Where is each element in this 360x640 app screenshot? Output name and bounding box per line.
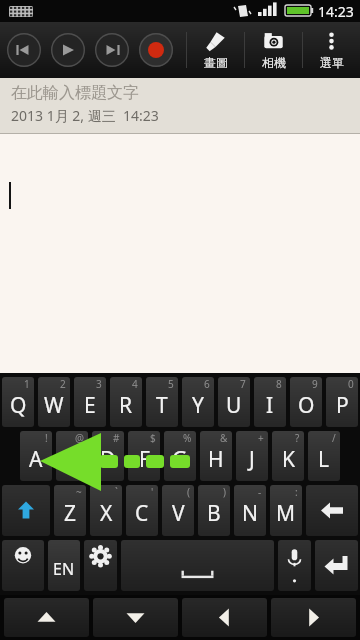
button[interactable]: 6 [182, 377, 214, 427]
button[interactable]: % [164, 431, 196, 481]
button[interactable]: : [270, 485, 302, 536]
button[interactable]: 相機 [245, 22, 302, 78]
button[interactable]: Backspace [306, 485, 358, 536]
staticText: F [139, 445, 150, 474]
button[interactable]: # [92, 431, 124, 481]
staticText: G [172, 445, 188, 474]
staticText: 3 [96, 377, 102, 391]
button[interactable]: ! [20, 431, 52, 481]
staticText: # [113, 431, 120, 445]
button[interactable]: Space [121, 540, 274, 591]
staticText: I [266, 391, 274, 420]
button[interactable]: Settings [84, 540, 117, 591]
staticText: ` [115, 485, 118, 499]
button[interactable]: Shift [2, 485, 50, 536]
staticText: 選單 [320, 55, 344, 70]
button[interactable]: Symbols [2, 540, 44, 591]
button[interactable]: @ [56, 431, 88, 481]
staticText: U [226, 391, 242, 420]
staticText: M [276, 499, 296, 528]
button[interactable]: 8 [254, 377, 286, 427]
staticText: / [332, 431, 336, 445]
staticText: Y [192, 391, 204, 420]
button[interactable]: $ [128, 431, 160, 481]
button[interactable]: 1 [2, 377, 34, 427]
button[interactable]: Previous [2, 28, 46, 72]
button[interactable]: 畫圖 [187, 22, 244, 78]
staticText: 7 [240, 377, 246, 391]
button[interactable]: 7 [218, 377, 250, 427]
staticText: J [249, 445, 255, 474]
button[interactable]: EN [48, 540, 80, 591]
staticText: R [119, 391, 133, 420]
button[interactable]: Down [93, 598, 178, 637]
staticText: 4 [132, 377, 138, 391]
button[interactable]: 選單 [303, 22, 360, 78]
button[interactable]: - [234, 485, 266, 536]
button[interactable]: 在此輸入標題文字 [0, 78, 360, 133]
staticText: S [66, 445, 78, 474]
staticText: V [172, 499, 185, 528]
button[interactable]: Record [134, 28, 178, 72]
staticText: ! [45, 431, 48, 445]
button[interactable]: & [200, 431, 232, 481]
staticText: H [208, 445, 224, 474]
button[interactable]: Next [90, 28, 134, 72]
staticText: Q [10, 391, 27, 420]
staticText: ' [151, 485, 154, 499]
button[interactable]: 5 [146, 377, 178, 427]
button[interactable]: / [308, 431, 340, 481]
button[interactable]: Left [182, 598, 267, 637]
staticText: ) [223, 485, 226, 499]
staticText: Z [64, 499, 77, 528]
staticText: 2 [60, 377, 66, 391]
staticText: 9 [312, 377, 318, 391]
staticText: N [242, 499, 258, 528]
staticText: : [295, 485, 298, 499]
staticText: L [318, 445, 330, 474]
staticText: - [258, 485, 262, 499]
staticText: D [100, 445, 116, 474]
staticText: ? [295, 431, 300, 445]
button[interactable]: 3 [74, 377, 106, 427]
staticText: EN [53, 558, 75, 580]
staticText: T [156, 391, 168, 420]
button[interactable]: Play [46, 28, 90, 72]
staticText: P [336, 391, 349, 420]
staticText: & [220, 431, 228, 445]
button[interactable]: Enter [315, 540, 358, 591]
staticText: ~ [76, 485, 82, 499]
button[interactable]: ? [272, 431, 304, 481]
staticText: X [100, 499, 113, 528]
button[interactable]: Up [4, 598, 89, 637]
staticText: 2013 1月 2, 週三 14:23 [11, 106, 159, 125]
staticText: 在此輸入標題文字 [11, 83, 139, 103]
button[interactable]: ~ [54, 485, 86, 536]
button[interactable]: ` [90, 485, 122, 536]
button[interactable]: 4 [110, 377, 142, 427]
button[interactable]: + [236, 431, 268, 481]
staticText: A [29, 445, 43, 474]
staticText: 8 [276, 377, 282, 391]
staticText: W [44, 391, 64, 420]
button[interactable]: ( [162, 485, 194, 536]
staticText: 5 [168, 377, 174, 391]
staticText: E [84, 391, 96, 420]
staticText: C [135, 499, 149, 528]
staticText: 畫圖 [204, 55, 228, 70]
staticText: + [258, 431, 264, 445]
button[interactable]: ) [198, 485, 230, 536]
staticText: $ [150, 431, 156, 445]
button[interactable]: 0 [326, 377, 358, 427]
staticText: 相機 [262, 55, 286, 70]
button[interactable]: Right [271, 598, 356, 637]
button[interactable]: Voice input [278, 540, 311, 591]
button[interactable]: ' [126, 485, 158, 536]
staticText: O [298, 391, 315, 420]
button[interactable]: 9 [290, 377, 322, 427]
staticText: B [207, 499, 221, 528]
staticText: 6 [204, 377, 210, 391]
staticText: 1 [24, 377, 30, 391]
button[interactable]: 2 [38, 377, 70, 427]
staticText: @ [75, 431, 84, 445]
